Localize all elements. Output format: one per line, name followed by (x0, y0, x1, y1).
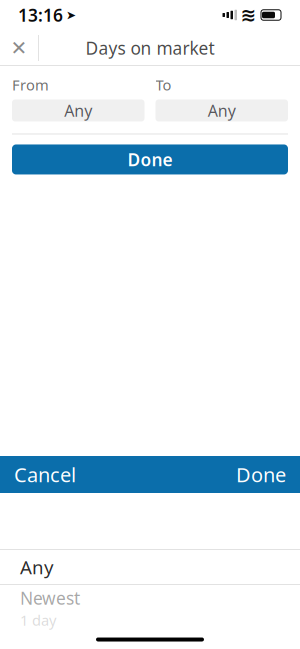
staticText: ≋ (240, 4, 256, 26)
button[interactable]: Any (155, 99, 288, 121)
staticText: Cancel (14, 461, 76, 488)
button[interactable]: Cancel (0, 456, 90, 493)
staticText: 1 day (20, 610, 56, 630)
staticText: To (155, 75, 171, 94)
button[interactable]: Done (12, 144, 288, 174)
button[interactable]: Newest (0, 585, 300, 611)
button[interactable]: 1 day (0, 611, 300, 629)
button[interactable]: Any (0, 550, 300, 584)
staticText: Any (64, 100, 92, 121)
staticText: 13:16 (18, 3, 63, 26)
staticText: ➤ (66, 8, 76, 22)
staticText: ✕ (10, 37, 27, 59)
staticText: Any (208, 100, 236, 121)
staticText: Newest (20, 586, 80, 609)
staticText: Days on market (85, 36, 214, 59)
staticText: From (12, 75, 49, 94)
staticText: Any (20, 555, 54, 579)
button[interactable]: Any (12, 99, 144, 121)
button[interactable]: Close (0, 30, 38, 66)
button[interactable]: Done (222, 456, 300, 493)
staticText: Done (127, 148, 172, 171)
staticText: Done (236, 461, 286, 488)
